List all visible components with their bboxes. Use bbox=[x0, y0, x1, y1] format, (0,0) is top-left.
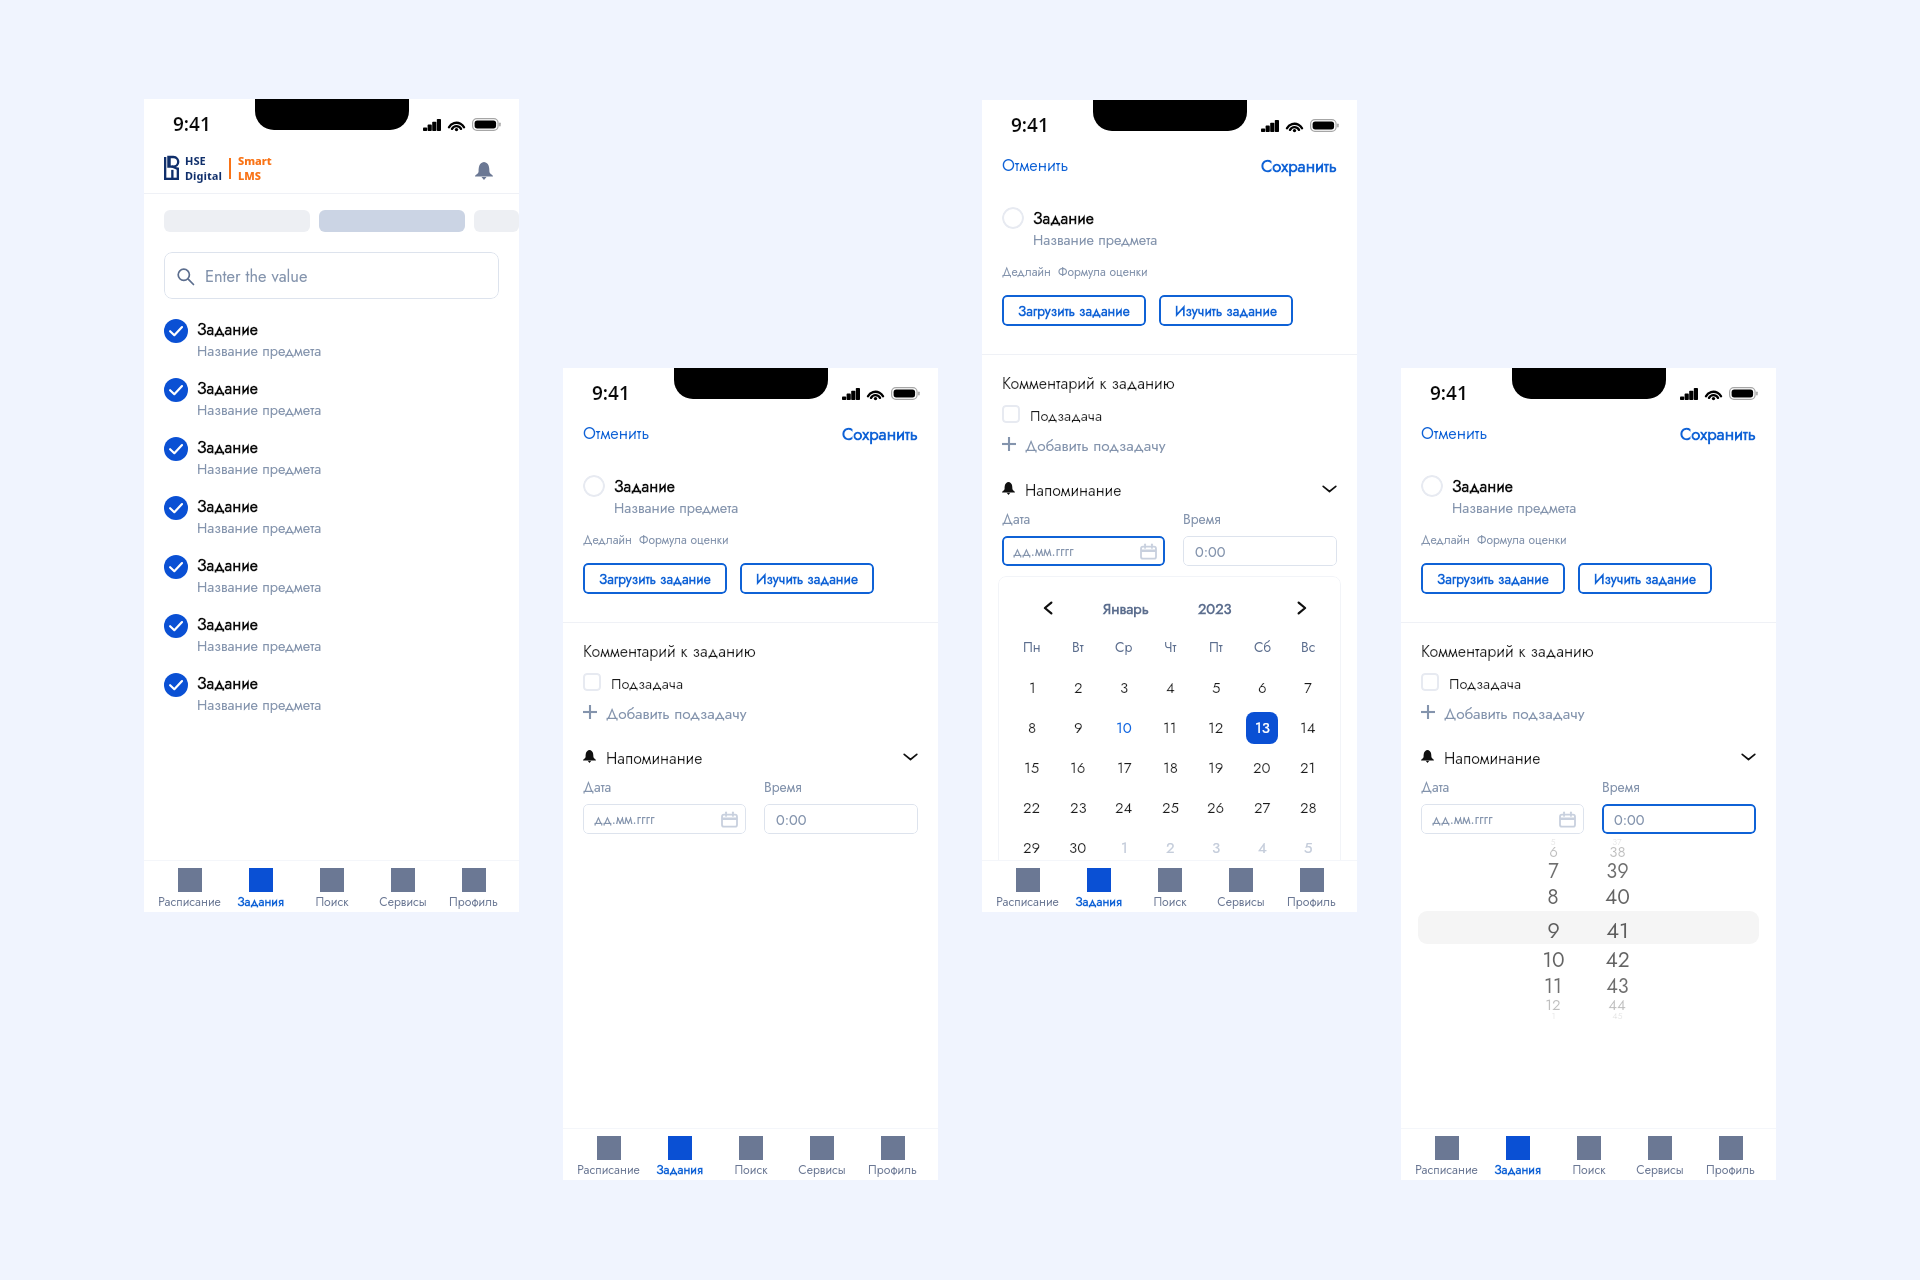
button[interactable]: Расписание bbox=[1411, 1129, 1482, 1180]
button[interactable]: Сервисы bbox=[367, 861, 438, 912]
button[interactable]: Изучить задание bbox=[740, 563, 874, 594]
button[interactable]: 16 bbox=[1062, 752, 1094, 784]
button[interactable]: 3 bbox=[1200, 832, 1232, 864]
button[interactable]: 4 bbox=[1246, 832, 1278, 864]
button[interactable]: 4 bbox=[1154, 672, 1186, 704]
button[interactable]: Профиль bbox=[1276, 861, 1347, 912]
button[interactable]: 29 bbox=[1016, 832, 1048, 864]
button[interactable]: 10 bbox=[1108, 712, 1140, 744]
button[interactable]: 23 bbox=[1062, 792, 1094, 824]
button[interactable] bbox=[1002, 207, 1024, 229]
button[interactable]: дд.мм.гггг bbox=[1421, 804, 1584, 834]
button[interactable]: 5 bbox=[1292, 832, 1324, 864]
button[interactable] bbox=[583, 475, 605, 497]
button[interactable]: 7 bbox=[1292, 672, 1324, 704]
button[interactable]: Next month bbox=[1290, 596, 1314, 620]
button[interactable]: Профиль bbox=[857, 1129, 928, 1180]
button[interactable]: Поиск bbox=[1553, 1129, 1624, 1180]
button[interactable]: 18 bbox=[1154, 752, 1186, 784]
button[interactable] bbox=[1421, 475, 1443, 497]
button[interactable]: 27 bbox=[1246, 792, 1278, 824]
button[interactable] bbox=[319, 210, 465, 232]
button[interactable]: Изучить задание bbox=[1159, 295, 1293, 326]
button[interactable]: Задания bbox=[225, 861, 296, 912]
button[interactable]: Загрузить задание bbox=[1421, 563, 1565, 594]
button[interactable]: 3 bbox=[1108, 672, 1140, 704]
button[interactable]: дд.мм.гггг bbox=[1002, 536, 1165, 566]
button[interactable]: Добавить подзадачу bbox=[583, 703, 747, 721]
button[interactable]: Расписание bbox=[573, 1129, 644, 1180]
button[interactable]: Подзадача bbox=[1002, 405, 1102, 423]
button[interactable]: Previous month bbox=[1036, 596, 1060, 620]
button[interactable]: 0:00 bbox=[764, 804, 918, 834]
button[interactable]: Notifications bbox=[469, 153, 499, 183]
button[interactable]: 9 bbox=[1062, 712, 1094, 744]
button[interactable]: Задания bbox=[1482, 1129, 1553, 1180]
button[interactable]: 22 bbox=[1016, 792, 1048, 824]
button[interactable]: Задания bbox=[644, 1129, 715, 1180]
button[interactable]: 2 bbox=[1062, 672, 1094, 704]
button[interactable]: Напоминание bbox=[1421, 747, 1756, 765]
button[interactable]: Задание bbox=[164, 318, 519, 377]
button[interactable]: Расписание bbox=[992, 861, 1063, 912]
button[interactable]: 0:00 bbox=[1602, 804, 1756, 834]
button[interactable]: 1 bbox=[1108, 832, 1140, 864]
button[interactable]: Отменить bbox=[583, 422, 650, 446]
button[interactable]: 17 bbox=[1108, 752, 1140, 784]
button[interactable]: 0:00 bbox=[1183, 536, 1337, 566]
button[interactable]: 25 bbox=[1154, 792, 1186, 824]
button[interactable]: Задание bbox=[164, 377, 519, 436]
button[interactable]: Профиль bbox=[1695, 1129, 1766, 1180]
button[interactable]: Загрузить задание bbox=[1002, 295, 1146, 326]
button[interactable]: Поиск bbox=[296, 861, 367, 912]
button[interactable]: Загрузить задание bbox=[583, 563, 727, 594]
button[interactable]: 13 bbox=[1246, 712, 1278, 744]
button[interactable]: 2 bbox=[1154, 832, 1186, 864]
button[interactable]: Добавить подзадачу bbox=[1421, 703, 1585, 721]
button[interactable]: Напоминание bbox=[1002, 479, 1337, 497]
button[interactable]: Сервисы bbox=[1205, 861, 1276, 912]
button[interactable]: Сервисы bbox=[786, 1129, 857, 1180]
button[interactable]: 24 bbox=[1108, 792, 1140, 824]
button[interactable]: Задание bbox=[164, 672, 519, 731]
staticText: Задание bbox=[197, 672, 258, 695]
button[interactable]: 12 bbox=[1200, 712, 1232, 744]
button[interactable]: 1 bbox=[1016, 672, 1048, 704]
button[interactable]: Изучить задание bbox=[1578, 563, 1712, 594]
button[interactable]: Отменить bbox=[1002, 154, 1069, 178]
button[interactable]: Задания bbox=[1063, 861, 1134, 912]
button[interactable]: 5 bbox=[1200, 672, 1232, 704]
button[interactable]: 19 bbox=[1200, 752, 1232, 784]
button[interactable]: Профиль bbox=[438, 861, 509, 912]
button[interactable]: Сервисы bbox=[1624, 1129, 1695, 1180]
button[interactable]: Задание bbox=[164, 613, 519, 672]
button[interactable]: Сохранить bbox=[842, 422, 918, 446]
button[interactable]: 28 bbox=[1292, 792, 1324, 824]
button[interactable]: 6 bbox=[1246, 672, 1278, 704]
button[interactable]: Поиск bbox=[1134, 861, 1205, 912]
button[interactable]: 21 bbox=[1292, 752, 1324, 784]
button[interactable]: Задание bbox=[164, 495, 519, 554]
button[interactable]: Напоминание bbox=[583, 747, 918, 765]
button[interactable]: Задание bbox=[164, 436, 519, 495]
button[interactable]: Подзадача bbox=[583, 673, 683, 691]
button[interactable]: Сохранить bbox=[1680, 422, 1756, 446]
button[interactable]: Enter the value bbox=[164, 252, 499, 299]
button[interactable]: дд.мм.гггг bbox=[583, 804, 746, 834]
button[interactable]: Поиск bbox=[715, 1129, 786, 1180]
button[interactable]: 26 bbox=[1200, 792, 1232, 824]
button[interactable]: Расписание bbox=[154, 861, 225, 912]
button[interactable]: 15 bbox=[1016, 752, 1048, 784]
button[interactable]: 14 bbox=[1292, 712, 1324, 744]
button[interactable]: 11 bbox=[1154, 712, 1186, 744]
button[interactable]: Добавить подзадачу bbox=[1002, 435, 1166, 453]
button[interactable]: Подзадача bbox=[1421, 673, 1521, 691]
button[interactable]: 8 bbox=[1016, 712, 1048, 744]
button[interactable]: 30 bbox=[1062, 832, 1094, 864]
button[interactable]: Задание bbox=[164, 554, 519, 613]
button[interactable]: Отменить bbox=[1421, 422, 1488, 446]
button[interactable]: Сохранить bbox=[1261, 154, 1337, 178]
button[interactable]: 20 bbox=[1246, 752, 1278, 784]
